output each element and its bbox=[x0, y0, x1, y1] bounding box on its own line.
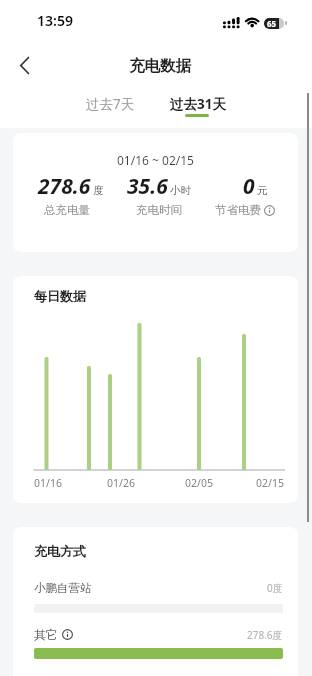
staticText: 充电数据 bbox=[129, 56, 191, 76]
staticText: 总充电量 bbox=[44, 203, 90, 217]
staticText: 过去7天 bbox=[86, 95, 135, 113]
staticText: 02/15 bbox=[256, 476, 284, 490]
staticText: 13:59 bbox=[37, 11, 73, 30]
button[interactable]: 过去31天 bbox=[170, 90, 226, 117]
staticText: 0 bbox=[243, 172, 255, 201]
staticText: 35.6 bbox=[127, 172, 168, 201]
staticText: 度 bbox=[93, 184, 104, 197]
staticText: 充电方式 bbox=[34, 543, 86, 559]
button[interactable]: 过去7天 bbox=[84, 90, 136, 117]
staticText: 元 bbox=[257, 184, 268, 197]
staticText: 其它 bbox=[34, 627, 58, 642]
button[interactable]: 其它 bbox=[34, 627, 283, 642]
staticText: 每日数据 bbox=[34, 288, 86, 304]
staticText: 278.6度 bbox=[247, 628, 283, 642]
staticText: 0度 bbox=[267, 581, 283, 595]
button[interactable]: 小鹏自营站 bbox=[34, 581, 283, 595]
staticText: 小鹏自营站 bbox=[34, 581, 92, 595]
staticText: 节省电费 bbox=[215, 203, 261, 217]
staticText: 小时 bbox=[170, 184, 191, 197]
staticText: 充电时间 bbox=[136, 203, 182, 217]
staticText: 01/16 bbox=[34, 476, 62, 490]
staticText: 278.6 bbox=[38, 172, 91, 201]
staticText: 02/05 bbox=[185, 476, 213, 490]
staticText: 01/26 bbox=[107, 476, 135, 490]
button[interactable] bbox=[10, 50, 40, 80]
staticText: 过去31天 bbox=[170, 95, 226, 113]
staticText: 01/16 ~ 02/15 bbox=[117, 152, 194, 168]
staticText: 65 bbox=[267, 18, 277, 29]
